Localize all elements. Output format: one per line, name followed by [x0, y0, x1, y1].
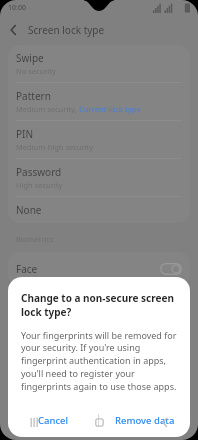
staticText: Swipe — [16, 51, 44, 65]
staticText: 10:00 — [8, 3, 26, 13]
staticText: Biometrics — [16, 234, 54, 244]
staticText: Current lock type — [79, 104, 141, 114]
button[interactable]: Home — [66, 404, 132, 440]
button[interactable]: None — [8, 197, 190, 223]
staticText: No security — [16, 66, 56, 76]
button[interactable]: Remove data — [99, 403, 190, 437]
button[interactable]: Cancel — [8, 403, 98, 437]
button[interactable]: Pattern — [8, 83, 190, 120]
button[interactable]: Back — [0, 16, 28, 44]
staticText: High security — [16, 180, 63, 190]
staticText: PIN — [16, 127, 34, 141]
staticText: Cancel — [38, 414, 69, 427]
staticText: Your fingerprints will be removed for yo… — [21, 329, 180, 393]
staticText: Face — [16, 262, 38, 276]
staticText: None — [16, 203, 42, 217]
button[interactable]: Swipe — [8, 45, 190, 82]
staticText: Screen lock type — [28, 23, 105, 37]
button[interactable]: Password — [8, 159, 190, 196]
staticText: Password — [16, 165, 62, 179]
button[interactable]: Face — [8, 252, 190, 286]
staticText: Change to a non-secure screen lock type? — [21, 291, 177, 319]
button[interactable]: Back — [132, 404, 198, 440]
staticText: Medium-high security — [16, 142, 94, 152]
button[interactable]: Recents — [0, 404, 66, 440]
staticText: Remove data — [115, 414, 175, 427]
button[interactable]: PIN — [8, 121, 190, 158]
staticText: Pattern — [16, 89, 51, 103]
staticText: Medium security, — [16, 104, 79, 114]
